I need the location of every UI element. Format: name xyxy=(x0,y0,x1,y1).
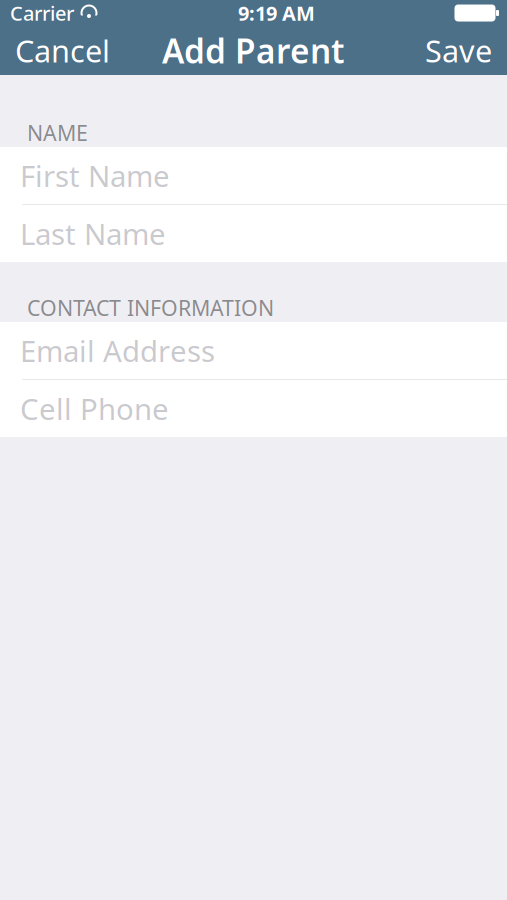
staticText: CONTACT INFORMATION xyxy=(27,294,274,322)
button[interactable]: First Name xyxy=(0,147,507,204)
button[interactable]: Save xyxy=(415,26,507,75)
staticText: Last Name xyxy=(20,214,166,253)
button[interactable]: Cancel xyxy=(0,26,120,75)
button[interactable]: Email Address xyxy=(0,322,507,379)
staticText: Save xyxy=(425,30,492,71)
staticText: Carrier xyxy=(10,0,74,26)
button[interactable]: Last Name xyxy=(0,205,507,262)
staticText: Cell Phone xyxy=(20,389,169,428)
staticText: First Name xyxy=(20,156,170,195)
staticText: NAME xyxy=(27,119,88,147)
button[interactable]: Cell Phone xyxy=(0,380,507,437)
staticText: Add Parent xyxy=(162,28,345,73)
staticText: Cancel xyxy=(15,30,110,71)
staticText: Email Address xyxy=(20,331,215,370)
staticText: 9:19 AM xyxy=(238,0,315,26)
